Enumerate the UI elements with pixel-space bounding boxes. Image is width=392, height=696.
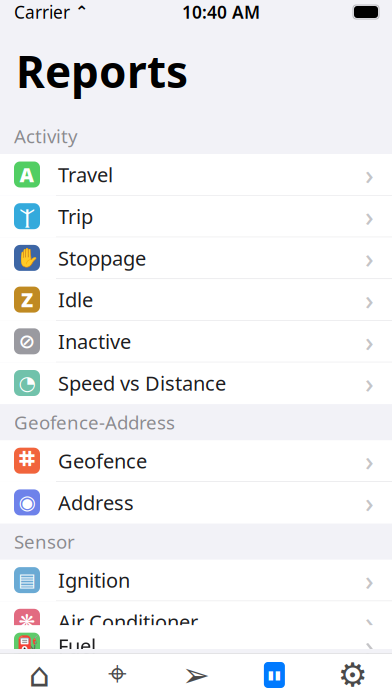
staticText: ⚙ — [338, 656, 368, 694]
button[interactable]: ◔ — [0, 362, 392, 404]
staticText: Carrier — [14, 0, 70, 23]
staticText: ⌖ — [108, 659, 127, 691]
staticText: › — [365, 365, 374, 401]
staticText: ▮▮ — [267, 668, 281, 682]
staticText: Address — [58, 489, 134, 516]
staticText: ◔ — [18, 372, 35, 394]
staticText: › — [365, 443, 374, 478]
staticText: Geofence-Address — [14, 410, 175, 435]
button[interactable]: ᛉ — [0, 196, 392, 237]
staticText: › — [365, 324, 374, 359]
staticText: Sensor — [14, 529, 75, 554]
staticText: › — [365, 604, 374, 639]
button[interactable]: Navigate — [157, 654, 235, 696]
button[interactable]: ▤ — [0, 560, 392, 601]
staticText: A — [19, 161, 34, 188]
staticText: Trip — [58, 203, 93, 229]
staticText: Activity — [14, 124, 78, 148]
staticText: › — [365, 198, 374, 234]
staticText: ⌂ — [29, 656, 50, 694]
staticText: ⌃ — [75, 3, 88, 21]
staticText: Reports — [16, 42, 188, 100]
staticText: ⛽ — [15, 635, 38, 656]
button[interactable]: Z — [0, 279, 392, 321]
button[interactable]: ◉ — [0, 482, 392, 524]
staticText: Speed vs Distance — [58, 370, 226, 396]
staticText: › — [365, 282, 374, 317]
staticText: › — [365, 157, 374, 192]
staticText: › — [365, 628, 374, 663]
staticText: Ignition — [58, 567, 130, 593]
staticText: Stoppage — [58, 245, 146, 271]
staticText: › — [365, 485, 374, 520]
staticText: ➢ — [182, 656, 210, 694]
button[interactable]: ⊘ — [0, 321, 392, 362]
button[interactable]: Home — [0, 654, 78, 696]
button[interactable]: Location — [78, 654, 157, 696]
staticText: ⌗ — [18, 447, 35, 474]
staticText: Geofence — [58, 447, 147, 474]
staticText: Z — [21, 286, 33, 313]
staticText: Fuel — [58, 632, 96, 659]
staticText: ◉ — [18, 491, 35, 514]
staticText: Inactive — [58, 328, 131, 355]
button[interactable]: ⌗ — [0, 440, 392, 482]
staticText: › — [365, 240, 374, 276]
button[interactable]: Reports — [235, 654, 314, 696]
staticText: ᛉ — [20, 204, 34, 229]
staticText: ✋ — [15, 247, 38, 268]
staticText: Idle — [58, 286, 93, 313]
staticText: 10:40 AM — [182, 0, 260, 23]
button[interactable]: ❋ — [0, 601, 392, 643]
button[interactable]: ⛽ — [0, 625, 392, 667]
staticText: ❋ — [18, 610, 35, 633]
button[interactable]: A — [0, 154, 392, 196]
button[interactable]: ✋ — [0, 237, 392, 279]
staticText: ⊘ — [18, 330, 35, 353]
staticText: Travel — [58, 161, 113, 188]
staticText: ▤ — [18, 569, 36, 591]
staticText: Air Conditioner — [58, 608, 198, 635]
button[interactable]: Settings — [314, 654, 392, 696]
staticText: › — [365, 562, 374, 598]
